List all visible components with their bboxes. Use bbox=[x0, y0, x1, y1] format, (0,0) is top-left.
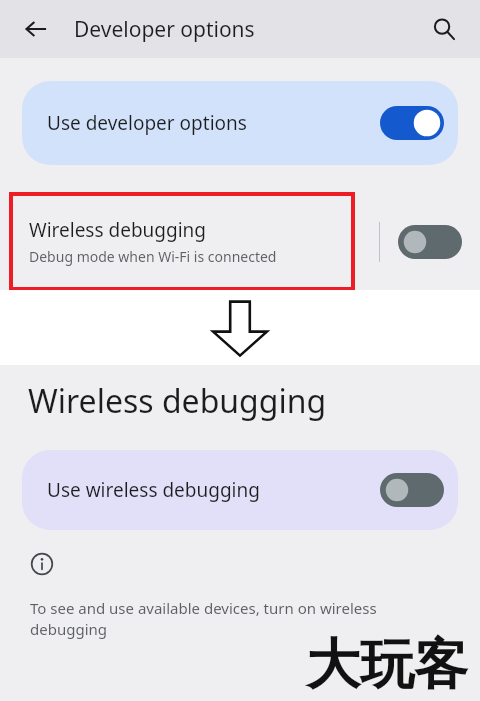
staticText: To see and use available devices, turn o… bbox=[30, 598, 377, 640]
staticText: 大玩客 bbox=[306, 631, 468, 699]
button[interactable]: Use wireless debugging bbox=[22, 450, 458, 530]
staticText: Developer options bbox=[74, 15, 255, 44]
button[interactable]: Wireless debugging bbox=[29, 217, 379, 266]
staticText: Wireless debugging bbox=[28, 379, 327, 423]
staticText: Use developer options bbox=[47, 110, 247, 136]
staticText: Use wireless debugging bbox=[47, 477, 260, 503]
other: Information bbox=[30, 552, 54, 576]
button[interactable] bbox=[398, 225, 462, 259]
staticText: Wireless debugging bbox=[29, 217, 207, 243]
button[interactable]: Search bbox=[422, 7, 466, 51]
button[interactable]: Use developer options bbox=[22, 81, 458, 165]
button[interactable]: Back bbox=[14, 7, 58, 51]
staticText: Debug mode when Wi-Fi is connected bbox=[29, 247, 277, 266]
